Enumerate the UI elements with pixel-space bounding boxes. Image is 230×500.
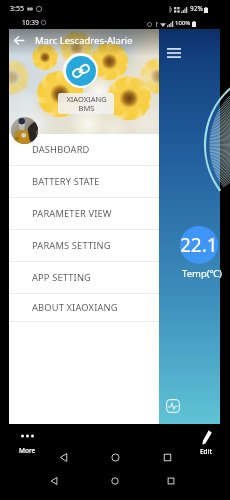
button[interactable]: Connect: [63, 53, 98, 88]
staticText: Temp(℃): [182, 267, 222, 280]
button[interactable]: Back: [9, 30, 29, 50]
staticText: More: [19, 446, 36, 455]
staticText: Edit: [200, 447, 212, 456]
button[interactable]: Home: [111, 453, 120, 462]
staticText: Marc Lescadres-Alarie: [35, 34, 133, 47]
staticText: APP SETTING: [32, 271, 92, 284]
button[interactable]: PARAMS SETTING: [9, 230, 159, 262]
button[interactable]: 22.1: [180, 226, 218, 264]
button[interactable]: More: [8, 434, 46, 464]
button[interactable]: Profile photo: [11, 117, 38, 144]
button[interactable]: APP SETTING: [9, 262, 159, 294]
button[interactable]: Recents: [167, 477, 175, 485]
button[interactable]: Edit: [187, 430, 225, 464]
staticText: BATTERY STATE: [32, 175, 100, 188]
button[interactable]: Open navigation drawer: [161, 40, 186, 65]
button[interactable]: DASHBOARD: [9, 134, 159, 166]
button[interactable]: BATTERY STATE: [9, 166, 159, 198]
staticText: XIAOXIANG BMS: [66, 94, 107, 114]
button[interactable]: Back: [50, 477, 58, 485]
button[interactable]: Recents: [163, 453, 172, 462]
button[interactable]: PARAMETER VIEW: [9, 198, 159, 230]
button[interactable]: Monitor: [163, 396, 183, 416]
staticText: 100%: [175, 19, 191, 27]
staticText: ABOUT XIAOXIANG: [32, 301, 118, 314]
staticText: DASHBOARD: [32, 143, 90, 156]
button[interactable]: Back: [59, 453, 68, 462]
staticText: 92%: [190, 4, 203, 13]
staticText: PARAMS SETTING: [32, 239, 111, 252]
button[interactable]: Home: [111, 477, 119, 485]
staticText: PARAMETER VIEW: [32, 207, 112, 220]
staticText: 3:55: [10, 4, 24, 14]
staticText: 22.1: [180, 232, 218, 258]
button[interactable]: ABOUT XIAOXIANG: [9, 294, 159, 322]
staticText: 10:39: [22, 18, 39, 27]
